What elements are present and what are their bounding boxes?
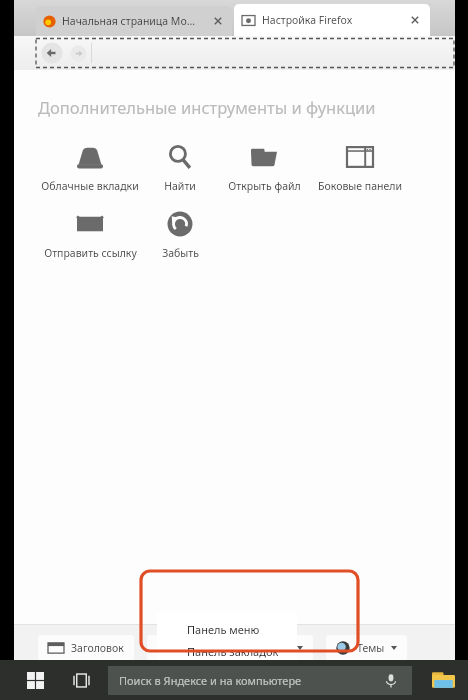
button[interactable]: Закрыть вкладку	[211, 14, 225, 28]
staticText: Открыть файл	[228, 179, 301, 193]
staticText: Панель закладок	[187, 644, 279, 659]
staticText: Заголовок	[71, 641, 124, 655]
staticText: Забыть	[162, 246, 199, 260]
button[interactable]: Найти	[142, 140, 218, 197]
button[interactable]: Темы	[326, 635, 407, 661]
button[interactable]: Проводник	[428, 665, 458, 695]
button[interactable]: Облачные вкладки	[38, 140, 142, 197]
button[interactable]: Настройка Firefox	[234, 4, 430, 36]
button[interactable]: Отправить ссылку	[38, 207, 142, 264]
button[interactable]: Вперёд	[68, 43, 88, 63]
staticText: Отправить ссылку	[44, 246, 137, 260]
staticText: Дополнительные инструменты и функции	[38, 96, 376, 118]
staticText: Показать / Скрыть панели	[157, 641, 291, 655]
button[interactable]: Закрыть вкладку	[408, 13, 422, 27]
button[interactable]: Пуск	[22, 667, 48, 693]
staticText: Поиск в Яндексе и на компьютере	[119, 673, 302, 688]
button[interactable]: Заголовок	[38, 635, 134, 661]
button[interactable]: Боковые панели	[310, 140, 410, 197]
staticText: Настройка Firefox	[262, 13, 353, 27]
button[interactable]: Голосовой поиск	[381, 671, 401, 691]
button[interactable]: Поиск в Яндексе и на компьютере	[108, 666, 412, 695]
staticText: Темы	[357, 641, 385, 655]
staticText: Панель меню	[187, 622, 260, 637]
staticText: Начальная страница Mo...	[62, 14, 196, 28]
staticText: Боковые панели	[318, 179, 402, 193]
button[interactable]: Показать / Скрыть панели	[147, 635, 313, 661]
button[interactable]: Открыть файл	[218, 140, 310, 197]
staticText: Найти	[164, 179, 196, 193]
button[interactable]: Панель меню	[157, 618, 297, 640]
button[interactable]: Забыть	[142, 207, 218, 264]
button[interactable]: Представление задач	[68, 667, 94, 693]
button[interactable]: Панель закладок	[157, 640, 297, 662]
staticText: Облачные вкладки	[41, 179, 139, 193]
button[interactable]: Назад	[40, 41, 64, 65]
button[interactable]: Начальная страница Mo...	[36, 6, 232, 36]
